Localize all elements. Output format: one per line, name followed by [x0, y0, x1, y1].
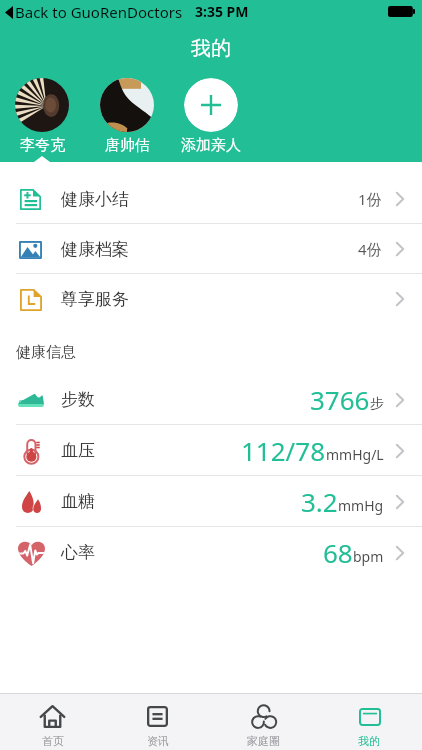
staticText: 添加亲人 — [181, 136, 241, 153]
button[interactable]: Home — [0, 694, 105, 750]
button[interactable]: 血压 — [0, 425, 422, 476]
staticText: 资讯 — [147, 734, 169, 748]
staticText: 步数 — [61, 389, 95, 410]
staticText: 心率 — [61, 542, 95, 563]
staticText: 3.2 — [301, 484, 338, 519]
staticText: 我的 — [358, 734, 380, 748]
button[interactable]: 步数 — [0, 374, 422, 425]
button[interactable]: 健康小结 — [0, 174, 422, 224]
other: Mine — [357, 705, 382, 728]
staticText: 3:35 PM — [195, 2, 249, 21]
other: Family — [251, 705, 276, 728]
other: Home — [40, 705, 65, 728]
other: News — [145, 705, 170, 728]
staticText: 步 — [370, 395, 384, 413]
button[interactable]: Back to GuoRenDoctors — [0, 2, 187, 22]
staticText: Back to GuoRenDoctors — [15, 2, 183, 22]
staticText: 家庭圈 — [247, 734, 280, 748]
staticText: mmHg/L — [326, 445, 384, 464]
staticText: 68 — [323, 535, 353, 570]
staticText: 李夸克 — [20, 136, 65, 153]
staticText: 唐帅佶 — [105, 136, 150, 153]
button[interactable]: 血糖 — [0, 476, 422, 527]
button[interactable]: News — [105, 694, 210, 750]
staticText: 我的 — [191, 36, 231, 61]
staticText: 健康信息 — [16, 343, 76, 362]
staticText: 首页 — [42, 734, 64, 748]
button[interactable]: 心率 — [0, 527, 422, 578]
button[interactable]: Mine — [316, 694, 422, 750]
staticText: bpm — [353, 547, 384, 566]
staticText: 血糖 — [61, 491, 95, 512]
staticText: 1份 — [358, 189, 382, 209]
staticText: 尊享服务 — [61, 289, 129, 310]
button[interactable]: 健康档案 — [0, 224, 422, 274]
button[interactable]: 尊享服务 — [0, 274, 422, 324]
staticText: 4份 — [358, 239, 382, 259]
staticText: 3766 — [310, 382, 370, 417]
staticText: 血压 — [61, 440, 95, 461]
button[interactable]: 李夸克 — [0, 78, 87, 153]
staticText: 112/78 — [241, 433, 326, 468]
staticText: 健康档案 — [61, 239, 129, 260]
staticText: 健康小结 — [61, 189, 129, 210]
staticText: mmHg — [338, 496, 384, 515]
button[interactable]: 添加亲人 — [166, 78, 256, 153]
button[interactable]: Family — [210, 694, 316, 750]
button[interactable]: 唐帅佶 — [82, 78, 172, 153]
